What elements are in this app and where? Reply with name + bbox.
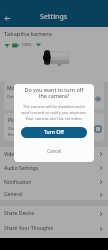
button[interactable]: Back — [1, 12, 14, 25]
staticText: Audio Settings — [4, 165, 39, 172]
staticText: Settings — [40, 12, 68, 22]
button[interactable]: Share Device — [0, 206, 108, 221]
button[interactable]: Cancel — [21, 145, 87, 156]
staticText: Video Settings — [4, 151, 38, 158]
staticText: Do you want to turn off the camera? — [21, 86, 87, 100]
button[interactable]: Notification — [0, 175, 108, 189]
staticText: Share Device — [4, 210, 35, 217]
staticText: Motion Detection — [7, 85, 48, 92]
staticText: Cancel — [47, 148, 62, 154]
staticText: 100% — [21, 42, 32, 48]
staticText: Detect people and movement — [7, 94, 63, 99]
button[interactable]: Video Settings — [0, 147, 108, 161]
staticText: Takapiha kamera — [4, 30, 52, 38]
staticText: Playback — [8, 117, 29, 124]
staticText: Notification — [4, 179, 32, 186]
button[interactable]: Turn Off — [21, 127, 87, 138]
staticText: Turn Off — [44, 129, 64, 136]
button[interactable]: Share Your Thoughts — [0, 221, 108, 236]
staticText: Cloud storage — [8, 126, 35, 131]
button[interactable]: Audio Settings — [0, 161, 108, 175]
staticText: The camera will be disabled and it won't… — [21, 104, 87, 121]
button[interactable]: General — [0, 189, 108, 200]
staticText: Share Your Thoughts — [4, 225, 54, 232]
staticText: Recordings — [8, 132, 29, 137]
staticText: General — [4, 191, 23, 198]
